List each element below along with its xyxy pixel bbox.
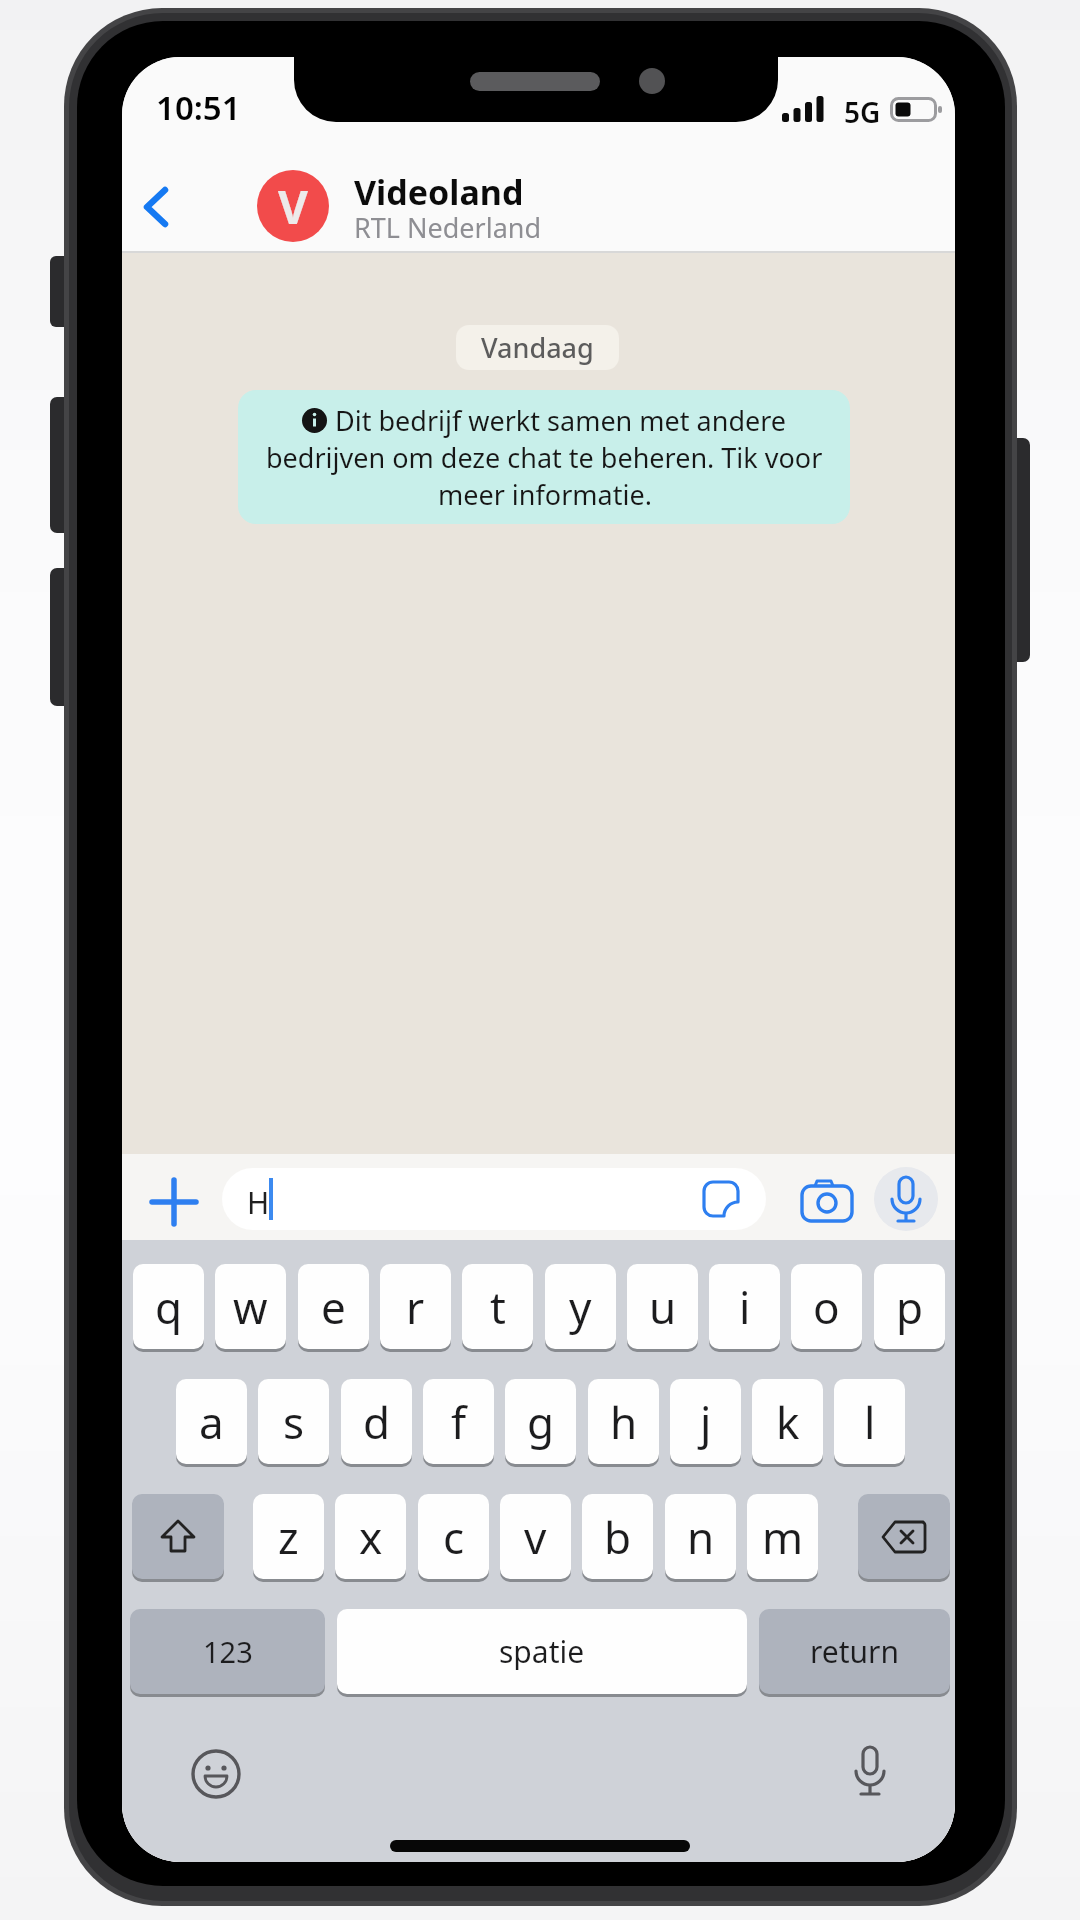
button[interactable]: o: [791, 1264, 862, 1349]
staticText: meer informatie.: [438, 476, 652, 513]
button[interactable]: c: [418, 1494, 489, 1579]
button[interactable]: m: [747, 1494, 818, 1579]
button[interactable]: v: [500, 1494, 571, 1579]
staticText: y: [569, 1277, 592, 1337]
staticText: u: [649, 1277, 677, 1337]
button[interactable]: [858, 1494, 950, 1579]
staticText: bedrijven om deze chat te beheren. Tik v…: [266, 439, 823, 476]
button[interactable]: spatie: [337, 1609, 747, 1694]
staticText: f: [451, 1392, 467, 1452]
staticText: Dit bedrijf werkt samen met andere: [335, 402, 787, 439]
staticText: 5G: [844, 93, 881, 131]
button[interactable]: t: [462, 1264, 533, 1349]
staticText: RTL Nederland: [354, 209, 542, 246]
button[interactable]: j: [670, 1379, 741, 1464]
staticText: z: [278, 1507, 299, 1567]
button[interactable]: [874, 1167, 938, 1231]
button[interactable]: [850, 1745, 890, 1801]
staticText: r: [406, 1277, 425, 1337]
button[interactable]: g: [505, 1379, 576, 1464]
staticText: x: [359, 1507, 383, 1567]
button[interactable]: x: [335, 1494, 406, 1579]
button[interactable]: r: [380, 1264, 451, 1349]
button[interactable]: H: [222, 1168, 766, 1230]
button[interactable]: [190, 1748, 242, 1800]
staticText: b: [604, 1507, 632, 1567]
staticText: m: [762, 1507, 804, 1567]
button[interactable]: V: [257, 170, 329, 242]
staticText: e: [321, 1277, 346, 1337]
staticText: i: [739, 1277, 751, 1337]
button[interactable]: q: [133, 1264, 204, 1349]
staticText: H: [247, 1182, 270, 1223]
staticText: d: [363, 1392, 391, 1452]
button[interactable]: [132, 1494, 224, 1579]
button[interactable]: z: [253, 1494, 324, 1579]
staticText: 123: [203, 1632, 253, 1671]
staticText: q: [155, 1277, 183, 1337]
button[interactable]: f: [423, 1379, 494, 1464]
staticText: Videoland: [354, 169, 524, 215]
button[interactable]: l: [834, 1379, 905, 1464]
staticText: t: [490, 1277, 506, 1337]
button[interactable]: 123: [130, 1609, 325, 1694]
button[interactable]: p: [874, 1264, 945, 1349]
staticText: s: [283, 1392, 305, 1452]
staticText: g: [527, 1392, 555, 1452]
button[interactable]: e: [298, 1264, 369, 1349]
staticText: Vandaag: [481, 329, 594, 366]
button[interactable]: Dit bedrijf werkt samen met andere: [238, 390, 850, 524]
button[interactable]: u: [627, 1264, 698, 1349]
staticText: l: [864, 1392, 876, 1452]
button[interactable]: d: [341, 1379, 412, 1464]
staticText: spatie: [499, 1631, 585, 1672]
button[interactable]: n: [665, 1494, 736, 1579]
button[interactable]: return: [759, 1609, 950, 1694]
button[interactable]: [702, 1180, 740, 1218]
button[interactable]: [152, 1180, 196, 1224]
staticText: w: [233, 1277, 268, 1337]
staticText: p: [896, 1277, 924, 1337]
staticText: c: [443, 1507, 465, 1567]
staticText: a: [199, 1392, 224, 1452]
staticText: n: [687, 1507, 715, 1567]
staticText: return: [810, 1631, 900, 1672]
staticText: o: [813, 1277, 840, 1337]
button[interactable]: k: [752, 1379, 823, 1464]
staticText: V: [278, 175, 308, 238]
button[interactable]: [142, 186, 170, 228]
staticText: h: [610, 1392, 638, 1452]
staticText: v: [524, 1507, 547, 1567]
staticText: j: [700, 1392, 712, 1452]
button[interactable]: b: [582, 1494, 653, 1579]
button[interactable]: [800, 1179, 854, 1223]
button[interactable]: s: [258, 1379, 329, 1464]
button[interactable]: h: [588, 1379, 659, 1464]
button[interactable]: a: [176, 1379, 247, 1464]
button[interactable]: w: [215, 1264, 286, 1349]
button[interactable]: y: [545, 1264, 616, 1349]
staticText: 10:51: [156, 85, 241, 130]
staticText: k: [776, 1392, 800, 1452]
button[interactable]: i: [709, 1264, 780, 1349]
